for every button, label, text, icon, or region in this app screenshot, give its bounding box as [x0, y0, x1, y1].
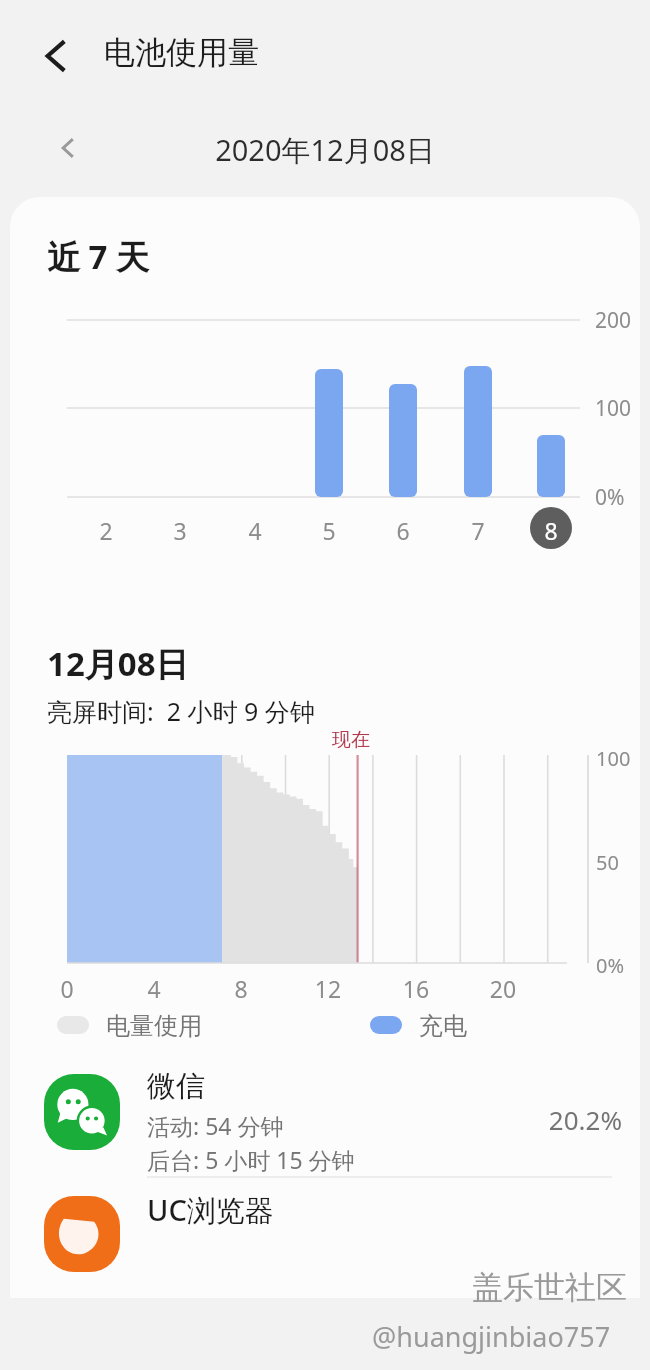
staticText: 亮屏时间: 2 小时 9 分钟 [47, 694, 315, 728]
staticText: 4 [132, 973, 176, 1004]
staticText: 0% [595, 483, 625, 512]
staticText: 后台: 5 小时 15 分钟 [147, 1144, 355, 1175]
staticText: 20 [481, 973, 525, 1004]
staticText: UC浏览器 [147, 1190, 274, 1230]
button[interactable]: 微信 [10, 1056, 640, 1176]
staticText: 4 [235, 515, 275, 546]
staticText: 100 [596, 745, 631, 772]
staticText: 200 [595, 306, 632, 335]
staticText: 0% [596, 952, 625, 979]
button[interactable]: Back [30, 30, 82, 82]
button[interactable]: UC浏览器 [10, 1178, 640, 1298]
staticText: 6 [383, 515, 423, 546]
staticText: 7 [458, 515, 498, 546]
staticText: 8 [219, 973, 263, 1004]
staticText: @huangjinbiao757 [372, 1318, 611, 1355]
staticText: 8 [531, 515, 571, 546]
staticText: 16 [394, 973, 438, 1004]
button[interactable]: Previous day [48, 128, 88, 168]
staticText: 100 [595, 394, 632, 423]
staticText: 电量使用 [106, 1011, 202, 1041]
staticText: 20.2% [510, 1102, 622, 1137]
staticText: 近 7 天 [47, 234, 150, 279]
staticText: 盖乐世社区 [472, 1268, 627, 1307]
staticText: 电池使用量 [104, 33, 259, 72]
staticText: 活动: 54 分钟 [147, 1110, 284, 1141]
staticText: 3 [160, 515, 200, 546]
staticText: 2020年12月08日 [0, 130, 650, 170]
staticText: 充电 [419, 1011, 467, 1041]
staticText: 50 [596, 849, 619, 876]
staticText: 2 [86, 515, 126, 546]
staticText: 12 [306, 973, 350, 1004]
staticText: 5 [309, 515, 349, 546]
staticText: 微信 [147, 1068, 205, 1105]
staticText: 0 [45, 973, 89, 1004]
staticText: 12月08日 [47, 641, 189, 686]
staticText: 现在 [332, 728, 370, 752]
